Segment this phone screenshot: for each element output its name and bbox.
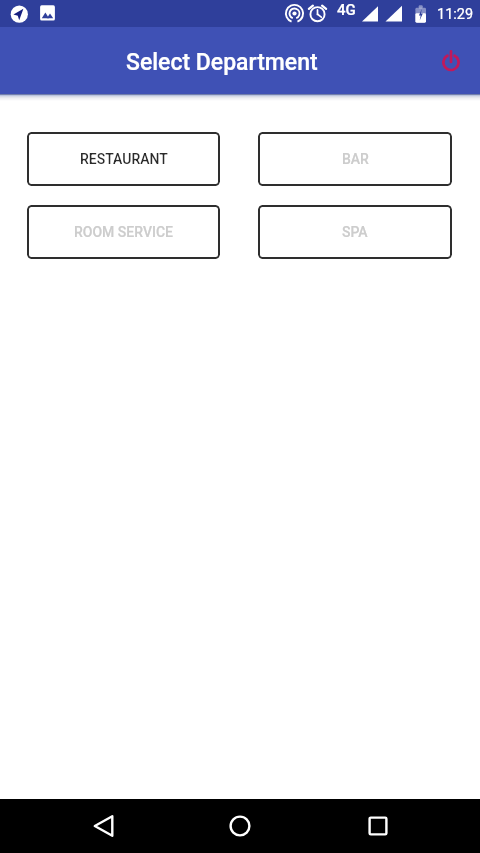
staticText: RESTAURANT [80, 151, 168, 167]
staticText: 4G [337, 1, 356, 19]
button[interactable]: SPA [258, 205, 452, 259]
button[interactable]: RESTAURANT [27, 132, 220, 186]
staticText: 11:29 [437, 6, 474, 23]
staticText: ROOM SERVICE [74, 224, 173, 240]
staticText: BAR [342, 151, 369, 167]
button[interactable]: Home [216, 802, 264, 850]
button[interactable]: Recent apps [354, 802, 402, 850]
button[interactable]: Log out [431, 43, 467, 79]
staticText: SPA [342, 224, 368, 240]
button[interactable]: ROOM SERVICE [27, 205, 220, 259]
staticText: Select Department [126, 49, 318, 76]
button[interactable]: Back [80, 802, 128, 850]
button[interactable]: BAR [258, 132, 452, 186]
